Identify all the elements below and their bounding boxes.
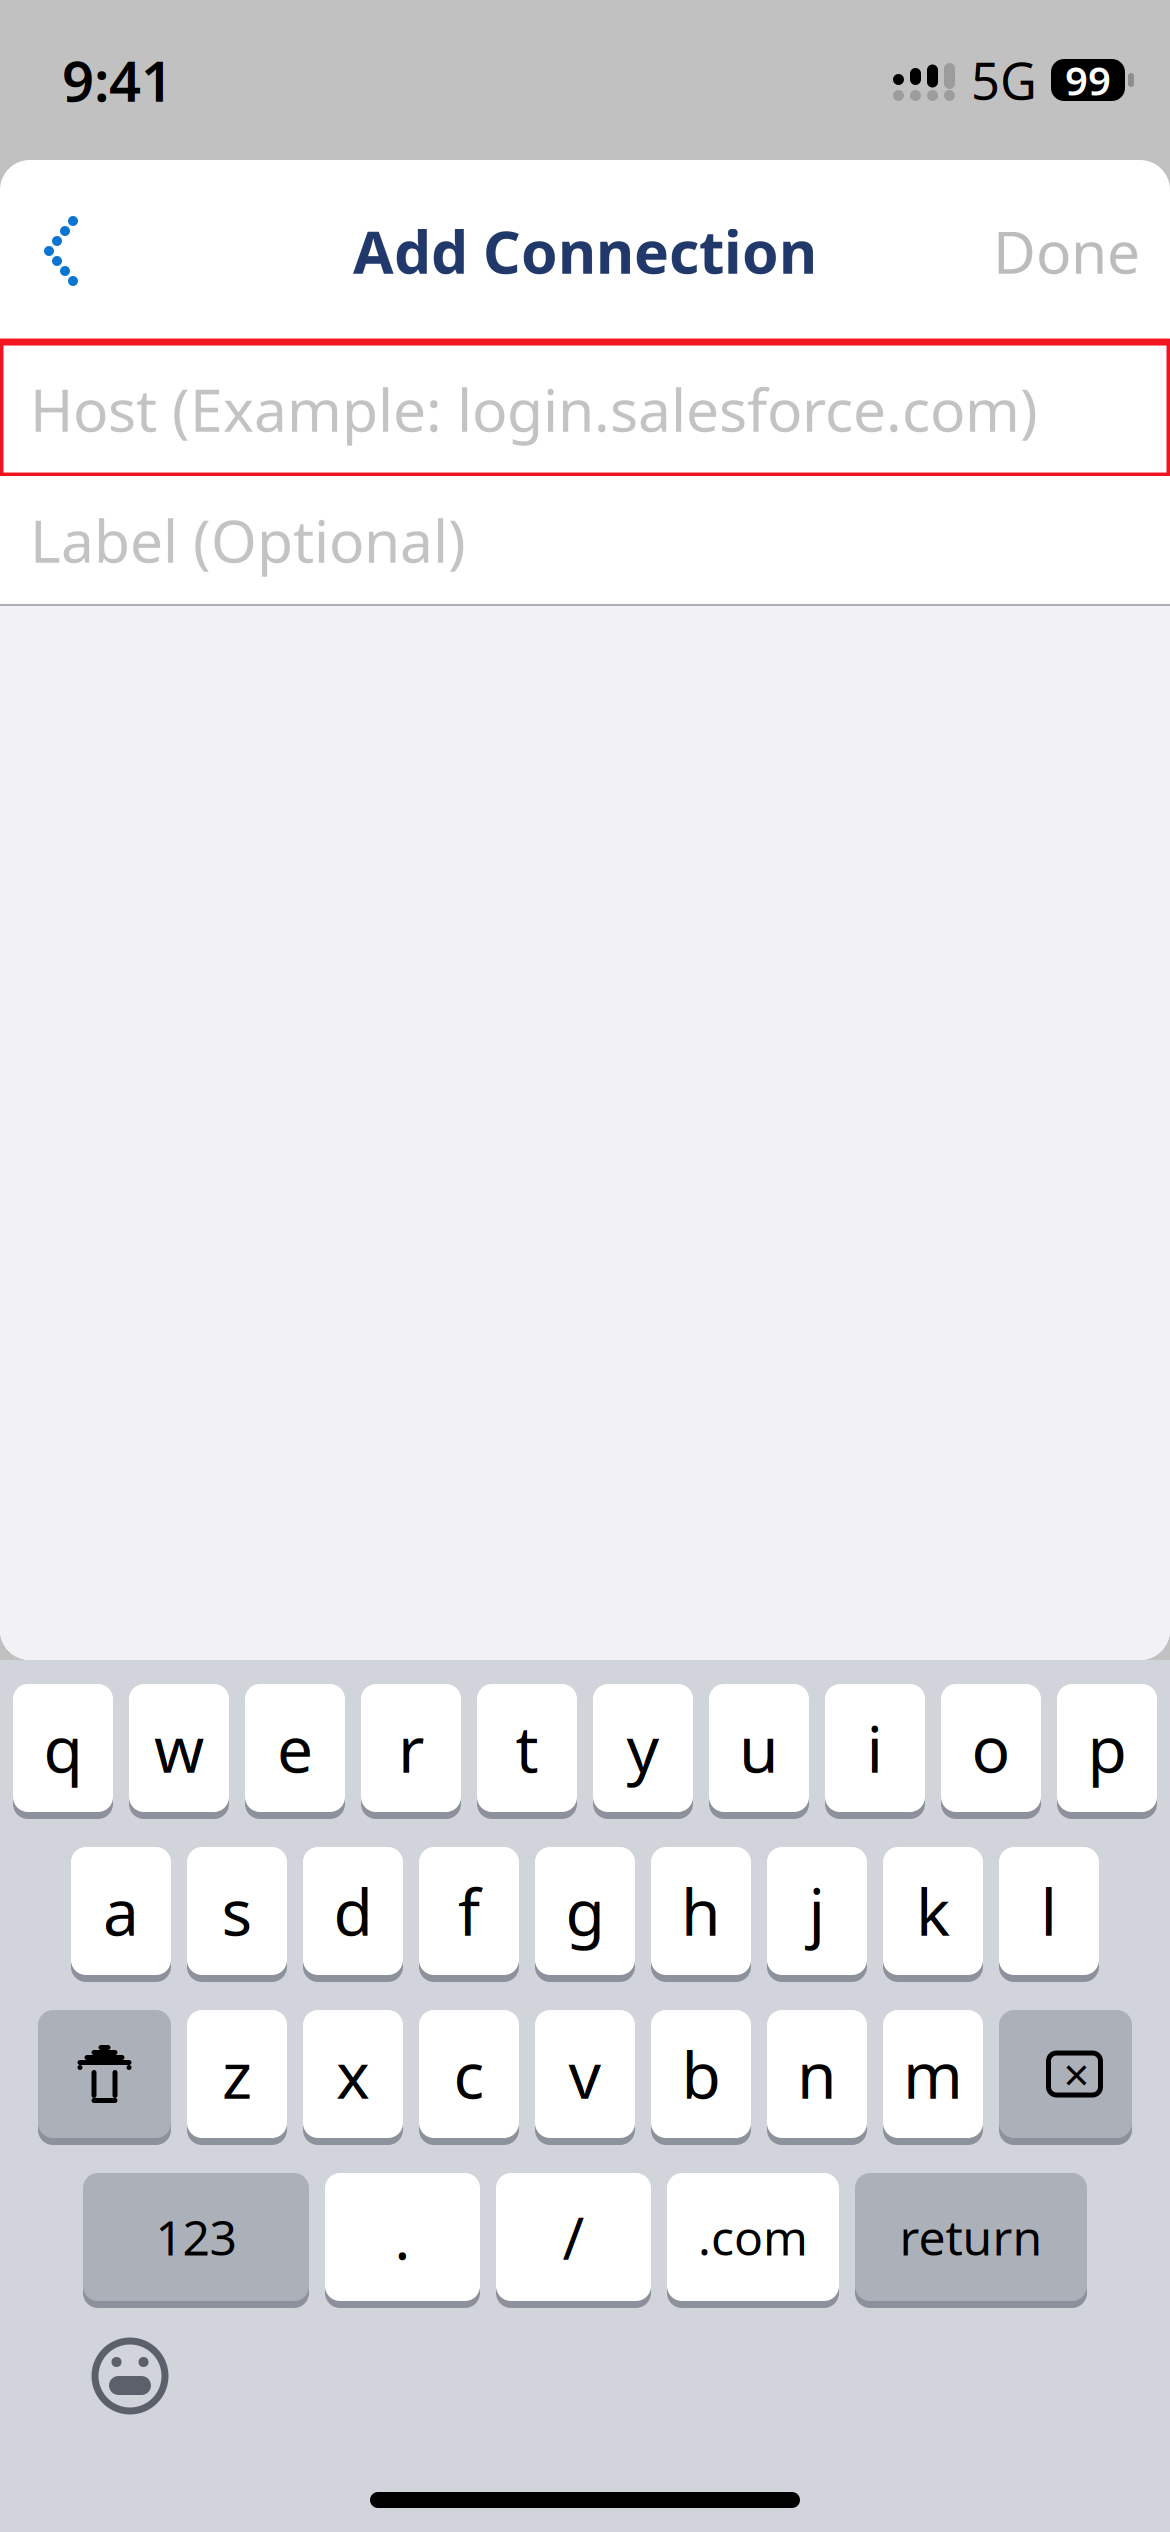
button[interactable]: x [303, 2010, 403, 2145]
button[interactable]: z [187, 2010, 287, 2145]
staticText: n [797, 2031, 837, 2116]
staticText: f [458, 1868, 480, 1953]
button[interactable]: Host (Example: login.salesforce.com) [0, 342, 1170, 476]
button[interactable]: n [767, 2010, 867, 2145]
button[interactable]: e [245, 1684, 345, 1819]
button[interactable]: Label (Optional) [0, 476, 1170, 604]
staticText: y [626, 1705, 659, 1790]
button[interactable]: w [129, 1684, 229, 1819]
button[interactable]: q [13, 1684, 113, 1819]
staticText: d [333, 1868, 372, 1953]
staticText: h [681, 1868, 721, 1953]
staticText: . [394, 2198, 410, 2276]
staticText: r [398, 1705, 424, 1790]
staticText: u [739, 1705, 779, 1790]
button[interactable]: p [1057, 1684, 1157, 1819]
staticText: Label (Optional) [30, 501, 466, 579]
button[interactable]: s [187, 1847, 287, 1982]
staticText: 5G [971, 46, 1037, 114]
staticText: Add Connection [353, 212, 817, 290]
staticText: Done [993, 212, 1140, 290]
staticText: k [916, 1868, 950, 1953]
staticText: 123 [155, 2205, 236, 2269]
button[interactable]: .com [667, 2173, 839, 2308]
staticText: q [43, 1705, 82, 1790]
staticText: o [971, 1705, 1010, 1790]
staticText: b [681, 2031, 720, 2116]
button[interactable]: h [651, 1847, 751, 1982]
staticText: 99 [1065, 53, 1111, 106]
button[interactable]: u [709, 1684, 809, 1819]
staticText: i [866, 1705, 883, 1790]
button[interactable]: o [941, 1684, 1041, 1819]
staticText: return [899, 2205, 1042, 2269]
button[interactable]: m [883, 2010, 983, 2145]
staticText: p [1087, 1705, 1126, 1790]
button[interactable]: k [883, 1847, 983, 1982]
button[interactable]: Delete [999, 2010, 1132, 2145]
staticText: g [565, 1868, 604, 1953]
button[interactable]: t [477, 1684, 577, 1819]
staticText: v [568, 2031, 601, 2116]
staticText: .com [698, 2205, 808, 2269]
button[interactable]: . [325, 2173, 480, 2308]
staticText: t [515, 1705, 538, 1790]
staticText: / [562, 2198, 584, 2276]
staticText: Host (Example: login.salesforce.com) [30, 370, 1038, 448]
button[interactable]: 123 [83, 2173, 309, 2308]
button[interactable]: v [535, 2010, 635, 2145]
button[interactable]: Back [0, 196, 110, 306]
button[interactable]: g [535, 1847, 635, 1982]
button[interactable]: j [767, 1847, 867, 1982]
button[interactable]: d [303, 1847, 403, 1982]
staticText: c [453, 2031, 484, 2116]
button[interactable]: c [419, 2010, 519, 2145]
staticText: z [222, 2031, 252, 2116]
button[interactable]: f [419, 1847, 519, 1982]
staticText: × [1063, 2044, 1089, 2104]
staticText: m [903, 2031, 963, 2116]
button[interactable]: Emoji keyboard [78, 2324, 182, 2428]
button[interactable]: / [496, 2173, 651, 2308]
staticText: a [103, 1868, 139, 1953]
staticText: l [1040, 1868, 1057, 1953]
button[interactable]: b [651, 2010, 751, 2145]
staticText: 9:41 [62, 43, 173, 117]
button[interactable]: y [593, 1684, 693, 1819]
button[interactable]: Done [963, 196, 1170, 306]
button[interactable]: r [361, 1684, 461, 1819]
button[interactable]: a [71, 1847, 171, 1982]
button[interactable]: return [855, 2173, 1087, 2308]
button[interactable]: l [999, 1847, 1099, 1982]
button[interactable]: Shift [38, 2010, 171, 2145]
staticText: j [808, 1868, 825, 1953]
staticText: s [221, 1868, 252, 1953]
button[interactable]: i [825, 1684, 925, 1819]
staticText: e [277, 1705, 313, 1790]
staticText: w [154, 1705, 204, 1790]
staticText: x [336, 2031, 370, 2116]
